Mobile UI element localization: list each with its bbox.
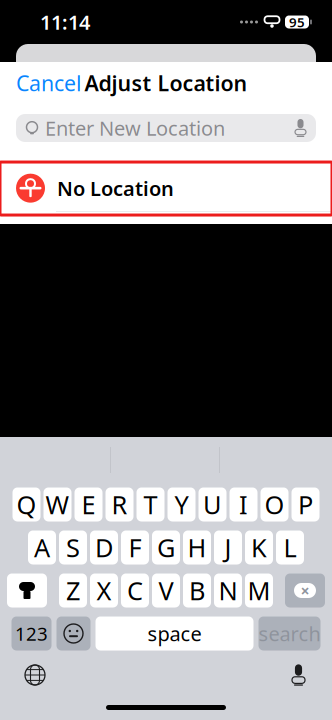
button[interactable]: T xyxy=(136,487,164,521)
staticText: H xyxy=(187,531,206,564)
staticText: X xyxy=(96,574,111,607)
staticText: Z xyxy=(66,574,80,607)
button[interactable]: Delete xyxy=(285,573,325,607)
staticText: N xyxy=(218,574,237,607)
staticText: B xyxy=(189,574,205,607)
button[interactable]: Next keyboard xyxy=(0,659,46,691)
button[interactable]: Emoji xyxy=(56,616,90,650)
staticText: C xyxy=(127,574,143,607)
staticText: Q xyxy=(16,488,36,521)
button[interactable]: H xyxy=(183,530,211,564)
staticText: R xyxy=(111,488,127,521)
button[interactable]: D xyxy=(90,530,118,564)
button[interactable]: O xyxy=(260,487,288,521)
staticText: F xyxy=(128,531,141,564)
staticText: T xyxy=(143,488,157,521)
button[interactable]: L xyxy=(276,530,304,564)
button[interactable]: I xyxy=(229,487,257,521)
staticText: V xyxy=(158,574,173,607)
button[interactable]: U xyxy=(198,487,226,521)
staticText: Y xyxy=(174,488,188,521)
button[interactable]: No Location xyxy=(0,162,332,215)
button[interactable]: V xyxy=(152,573,180,607)
staticText: O xyxy=(264,488,284,521)
button[interactable]: W xyxy=(43,487,71,521)
button[interactable]: Q xyxy=(12,487,40,521)
staticText: L xyxy=(283,531,296,564)
button[interactable]: N xyxy=(214,573,242,607)
staticText: 123 xyxy=(15,621,48,646)
button[interactable]: Dictation xyxy=(291,659,332,691)
button[interactable]: space xyxy=(95,616,253,650)
button[interactable]: E xyxy=(74,487,102,521)
button[interactable]: X xyxy=(90,573,118,607)
staticText: Adjust Location xyxy=(84,69,247,97)
staticText: No Location xyxy=(57,175,174,201)
staticText: M xyxy=(247,574,270,607)
staticText: Cancel xyxy=(16,69,82,97)
staticText: W xyxy=(45,488,69,521)
staticText: space xyxy=(147,620,201,647)
button[interactable]: G xyxy=(152,530,180,564)
staticText: Enter New Location xyxy=(45,115,225,141)
button[interactable]: Cancel xyxy=(0,61,82,105)
staticText: D xyxy=(95,531,113,564)
staticText: U xyxy=(203,488,222,521)
button[interactable]: P xyxy=(291,487,319,521)
staticText: search xyxy=(258,620,320,647)
staticText: S xyxy=(66,531,80,564)
staticText: × xyxy=(300,580,309,601)
button[interactable]: S xyxy=(59,530,87,564)
staticText: E xyxy=(81,488,95,521)
button[interactable]: K xyxy=(245,530,273,564)
button[interactable]: 123 xyxy=(11,616,51,650)
button[interactable]: J xyxy=(214,530,242,564)
button[interactable]: B xyxy=(183,573,211,607)
staticText: J xyxy=(224,531,231,564)
button[interactable]: R xyxy=(105,487,133,521)
button[interactable]: F xyxy=(121,530,149,564)
staticText: P xyxy=(298,488,313,521)
button[interactable]: Z xyxy=(59,573,87,607)
button[interactable]: M xyxy=(245,573,273,607)
staticText: G xyxy=(157,531,175,564)
button[interactable]: Shift xyxy=(7,573,47,607)
button[interactable]: A xyxy=(28,530,56,564)
button[interactable]: C xyxy=(121,573,149,607)
button[interactable]: Y xyxy=(167,487,195,521)
staticText: 95 xyxy=(289,13,305,31)
staticText: A xyxy=(34,531,50,564)
button[interactable]: search xyxy=(258,616,320,650)
staticText: K xyxy=(251,531,267,564)
staticText: 11:14 xyxy=(40,9,90,35)
staticText: I xyxy=(239,488,248,521)
